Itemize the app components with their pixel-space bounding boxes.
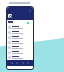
button[interactable] [7, 45, 33, 50]
button[interactable] [7, 50, 33, 55]
button[interactable] [7, 25, 33, 30]
button[interactable] [7, 35, 33, 40]
button[interactable] [7, 40, 33, 45]
button[interactable]: Profile [8, 14, 12, 18]
button[interactable] [7, 30, 33, 35]
button[interactable] [7, 55, 33, 60]
